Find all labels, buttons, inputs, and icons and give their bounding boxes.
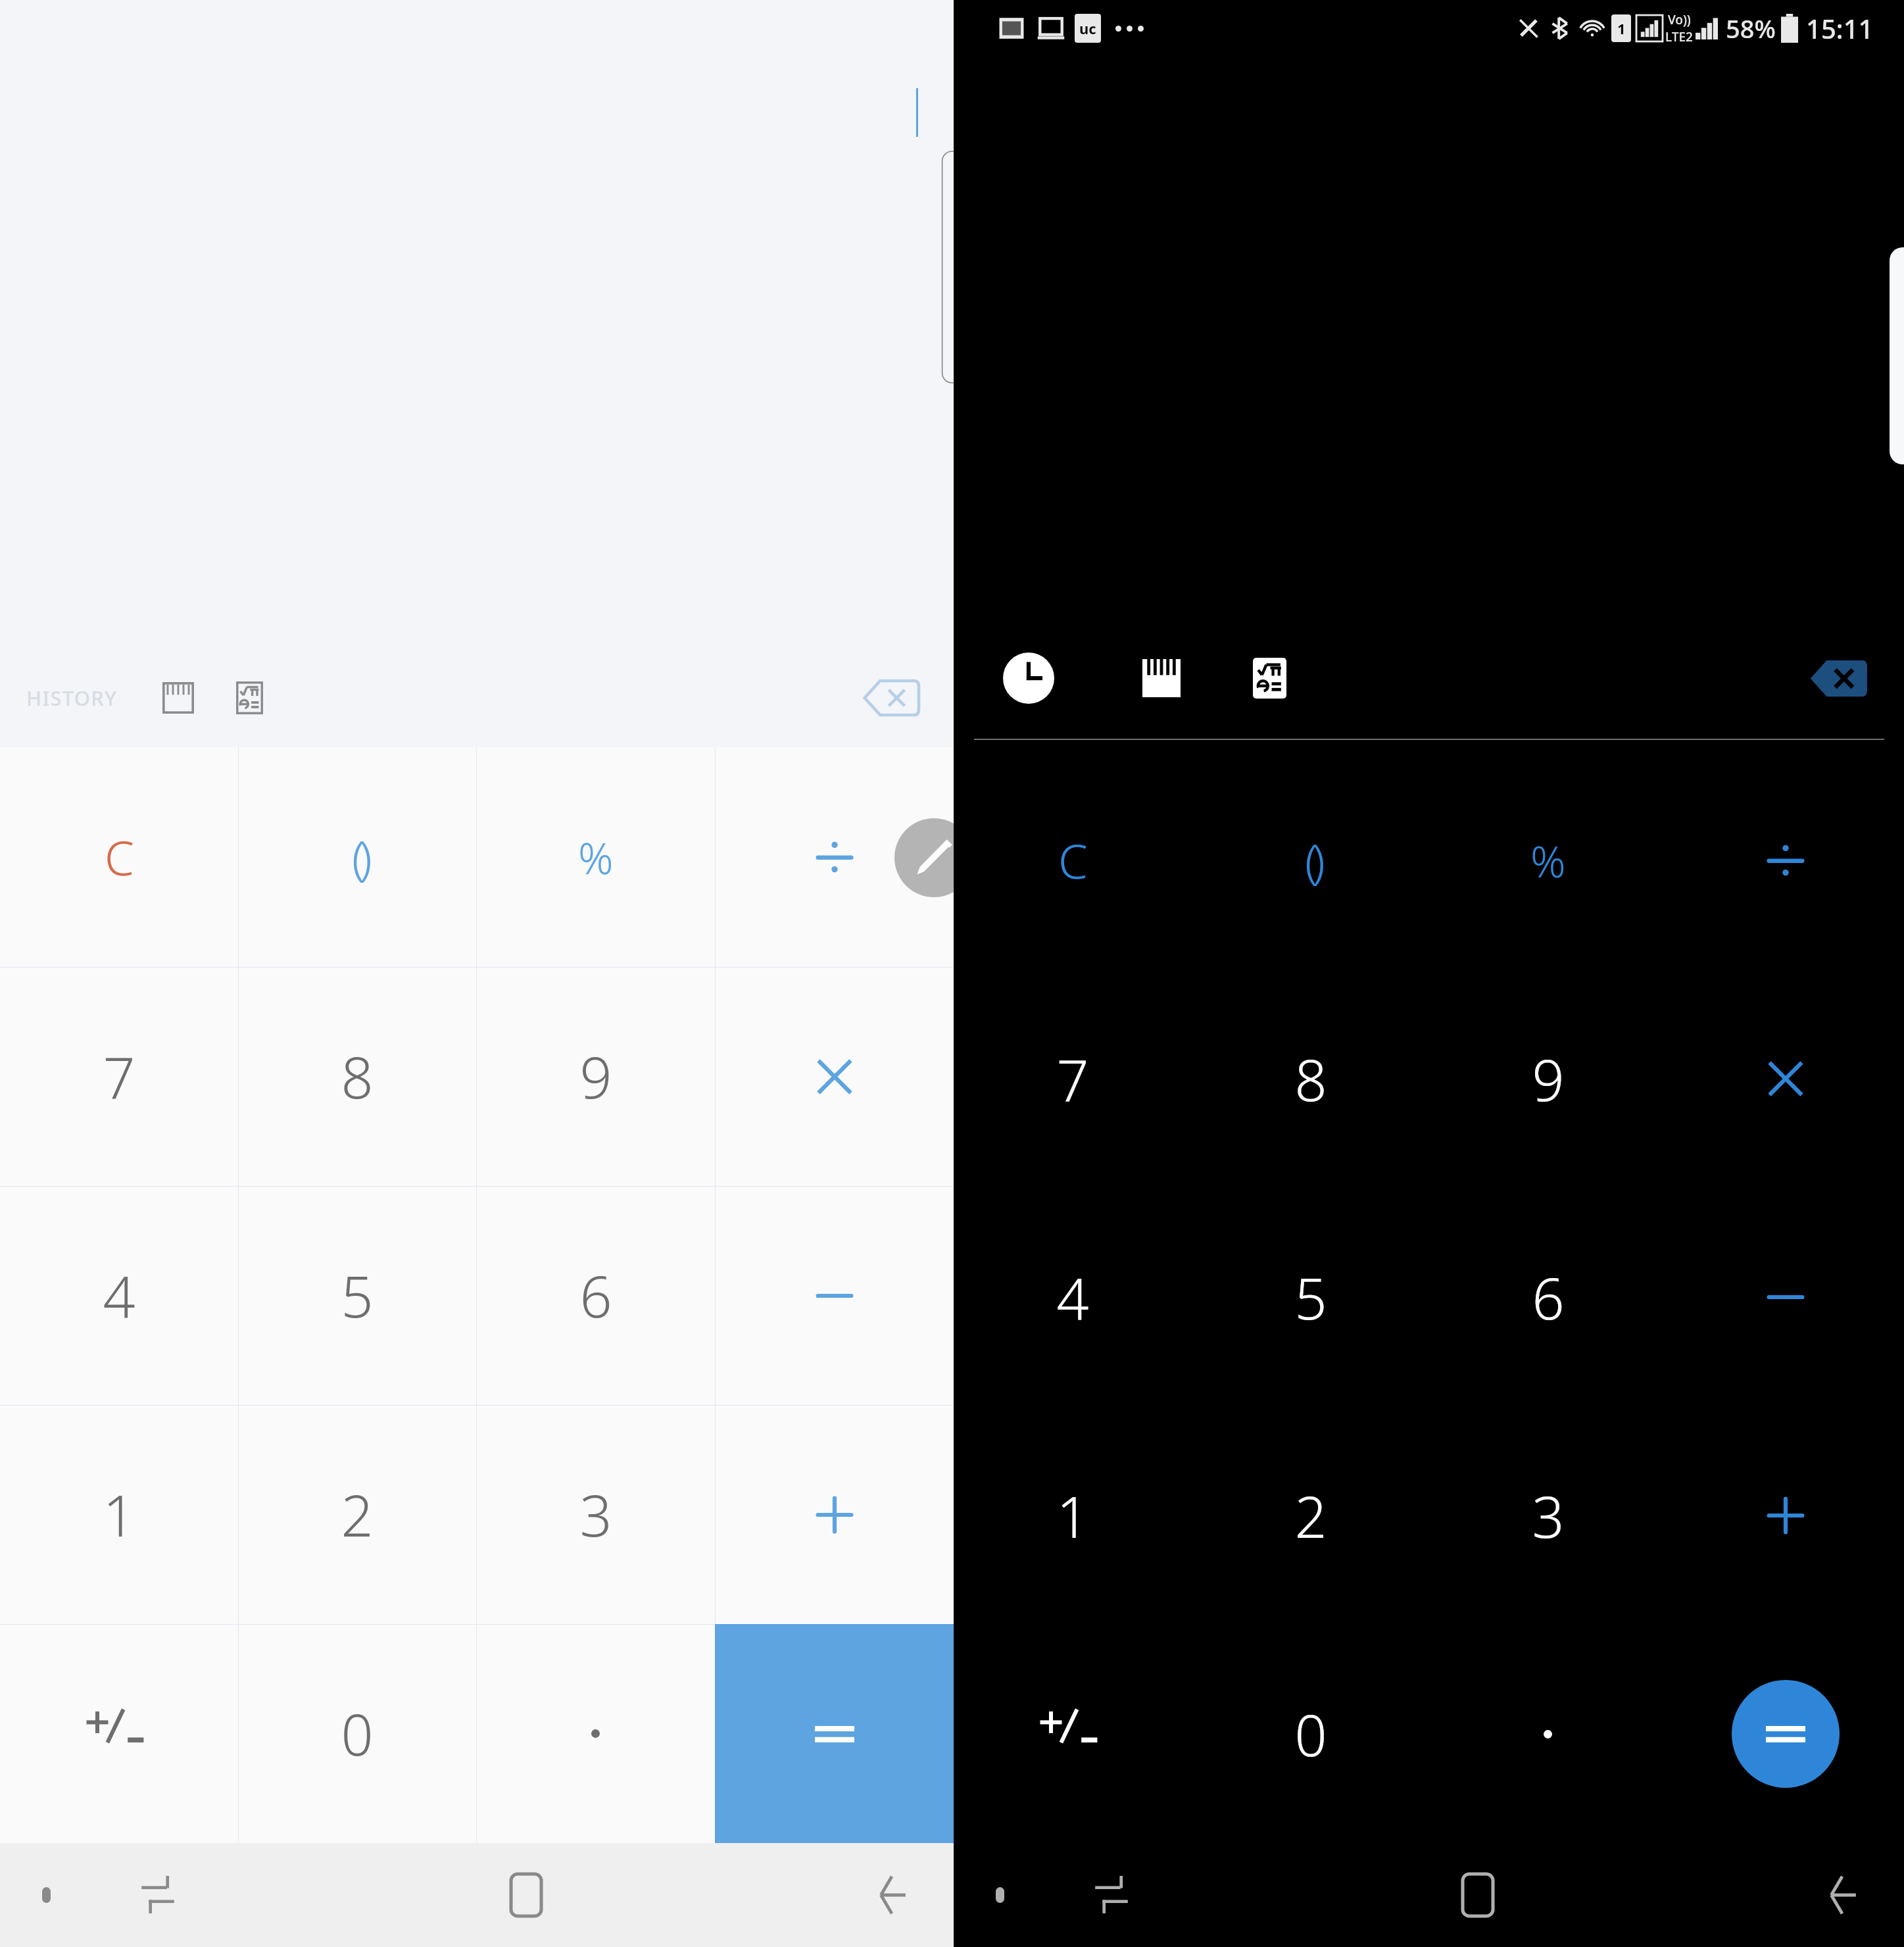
button[interactable] [954,1625,1192,1843]
button[interactable] [1667,1406,1904,1625]
staticText: 58% [1726,11,1776,45]
button[interactable] [476,1624,715,1843]
button[interactable]: 7 [954,970,1192,1188]
button[interactable]: ( ) [1192,751,1429,970]
button[interactable]: 8 [238,967,476,1186]
staticText: 8 [341,1038,374,1115]
staticText: 4 [103,1257,135,1334]
staticText: 7 [103,1038,135,1115]
button[interactable]: Menu [954,1843,1046,1947]
button[interactable] [0,1624,238,1843]
button[interactable] [715,747,954,967]
button[interactable] [1667,1188,1904,1406]
button[interactable]: History [994,644,1063,712]
button[interactable]: 2 [1192,1406,1429,1625]
button[interactable]: 9 [1429,970,1667,1188]
staticText: 0 [1294,1696,1327,1773]
button[interactable]: Backspace [1772,629,1904,727]
staticText: 1 [1617,18,1626,38]
staticText: C [105,825,134,889]
button[interactable]: Home [1422,1843,1534,1947]
button[interactable] [1667,1625,1904,1843]
staticText: 4 [1056,1259,1089,1336]
button[interactable]: Backspace [829,649,954,747]
button[interactable]: Menu [0,1843,92,1947]
staticText: HISTORY [26,684,118,712]
staticText: 9 [1532,1041,1565,1118]
button[interactable] [715,967,954,1186]
button[interactable] [1667,751,1904,970]
staticText: 9 [579,1038,612,1115]
staticText: ( ) [352,825,363,889]
button[interactable] [1667,970,1904,1188]
staticText: 1 [1056,1477,1089,1554]
button[interactable]: Recents [1046,1843,1177,1947]
button[interactable]: 5 [238,1186,476,1405]
button[interactable]: Handwriting input [894,818,973,897]
staticText: 15:11 [1806,11,1874,46]
button[interactable]: 4 [0,1186,238,1405]
button[interactable]: 6 [1429,1188,1667,1406]
button[interactable]: Unit converter [143,649,213,747]
button[interactable]: 4 [954,1188,1192,1406]
staticText: 6 [1532,1259,1565,1336]
staticText: 1 [103,1476,135,1553]
staticText: 5 [341,1257,374,1334]
button[interactable]: Back [1779,1843,1904,1947]
button[interactable] [1429,1625,1667,1843]
button[interactable]: 3 [476,1405,715,1624]
staticText: 2 [341,1476,374,1553]
button[interactable]: 2 [238,1405,476,1624]
button[interactable]: HISTORY [0,649,143,747]
button[interactable]: ( ) [238,747,476,967]
staticText: uc [1079,18,1096,38]
button[interactable]: C [0,747,238,967]
button[interactable]: 6 [476,1186,715,1405]
staticText: 5 [1294,1259,1327,1336]
staticText: 3 [1532,1477,1565,1554]
button[interactable]: C [954,751,1192,970]
staticText: 7 [1056,1041,1089,1118]
button[interactable]: 5 [1192,1188,1429,1406]
staticText: 2 [1294,1477,1327,1554]
staticText: % [578,827,614,887]
button[interactable] [715,1405,954,1624]
staticText: C [1058,828,1088,893]
staticText: % [1530,831,1566,890]
button[interactable]: % [476,747,715,967]
staticText: Vo)) [1668,11,1691,28]
button[interactable]: 8 [1192,970,1429,1188]
button[interactable]: 0 [238,1624,476,1843]
button[interactable]: Recents [92,1843,224,1947]
staticText: 6 [579,1257,612,1334]
button[interactable]: Unit converter [1127,644,1196,712]
button[interactable]: % [1429,751,1667,970]
staticText: 0 [341,1695,374,1772]
staticText: 8 [1294,1041,1327,1118]
button[interactable]: Back [829,1843,954,1947]
button[interactable]: 1 [0,1405,238,1624]
staticText: 3 [579,1476,612,1553]
staticText: ( ) [1305,828,1316,893]
button[interactable]: 9 [476,967,715,1186]
staticText: LTE2 [1665,28,1693,45]
button[interactable]: 1 [954,1406,1192,1625]
button[interactable]: 0 [1192,1625,1429,1843]
button[interactable] [715,1186,954,1405]
button[interactable]: Scientific calculator [1235,644,1304,712]
button[interactable]: Scientific calculator [214,649,284,747]
button[interactable]: 3 [1429,1406,1667,1625]
button[interactable]: 7 [0,967,238,1186]
button[interactable]: Home [470,1843,582,1947]
button[interactable] [715,1624,954,1843]
